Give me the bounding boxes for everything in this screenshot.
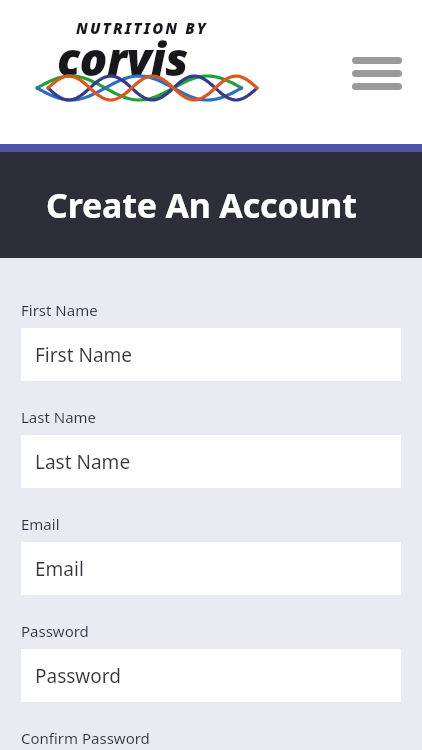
staticText: First Name [35,342,133,368]
button[interactable]: Last Name [21,435,401,488]
button[interactable]: Password [21,649,401,702]
staticText: Last Name [21,407,97,427]
staticText: Password [21,621,89,641]
button[interactable]: Email [21,542,401,595]
staticText: Create An Account [46,182,357,228]
staticText: Password [35,663,121,689]
button[interactable]: Open navigation menu [346,50,408,96]
staticText: Email [35,556,84,582]
staticText: corvis [57,27,188,90]
staticText: Confirm Password [21,728,150,748]
staticText: Email [21,514,60,534]
staticText: Last Name [35,449,131,475]
button[interactable]: Nutrition by Corvis home [21,10,271,110]
staticText: NUTRITION BY [76,18,209,38]
staticText: First Name [21,300,98,320]
button[interactable]: First Name [21,328,401,381]
